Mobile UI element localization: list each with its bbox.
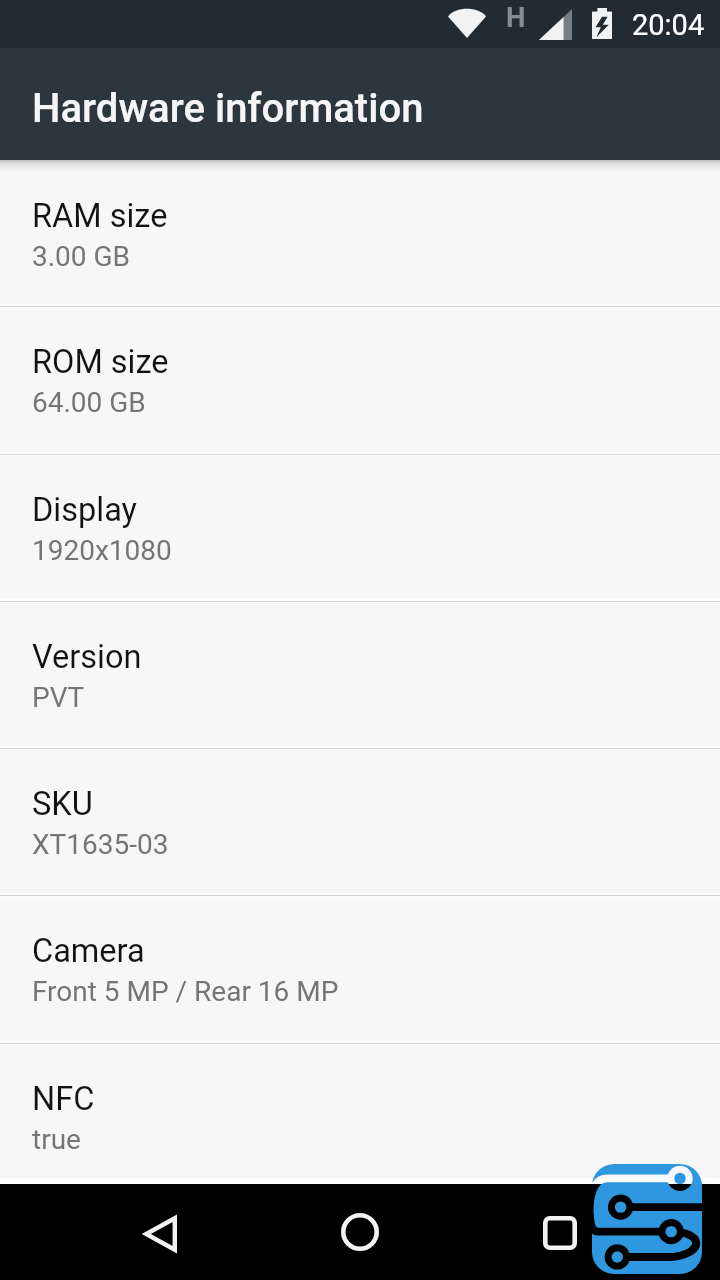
staticText: 3.00 GB (32, 240, 131, 273)
staticText: Camera (32, 932, 145, 970)
staticText: 20:04 (632, 8, 705, 42)
button[interactable]: ROM size (0, 306, 720, 454)
button[interactable]: Recent apps (500, 1193, 620, 1273)
staticText: H (506, 1, 526, 33)
staticText: NFC (32, 1080, 95, 1118)
staticText: true (32, 1123, 81, 1156)
staticText: Version (32, 638, 142, 676)
button[interactable]: Back (100, 1194, 220, 1274)
staticText: 64.00 GB (32, 386, 146, 419)
staticText: 1920x1080 (32, 534, 172, 567)
button[interactable]: SKU (0, 748, 720, 895)
staticText: XT1635-03 (32, 828, 169, 861)
button[interactable]: Home (300, 1192, 420, 1272)
button[interactable]: Version (0, 601, 720, 748)
staticText: PVT (32, 681, 85, 714)
staticText: Front 5 MP / Rear 16 MP (32, 975, 339, 1008)
staticText: Hardware information (32, 85, 424, 132)
staticText: Display (32, 491, 137, 529)
staticText: RAM size (32, 197, 168, 235)
staticText: SKU (32, 785, 93, 823)
button[interactable]: Display (0, 454, 720, 601)
button[interactable]: NFC (0, 1043, 720, 1180)
button[interactable]: RAM size (0, 160, 720, 306)
button[interactable]: Camera (0, 895, 720, 1043)
staticText: ROM size (32, 343, 169, 381)
